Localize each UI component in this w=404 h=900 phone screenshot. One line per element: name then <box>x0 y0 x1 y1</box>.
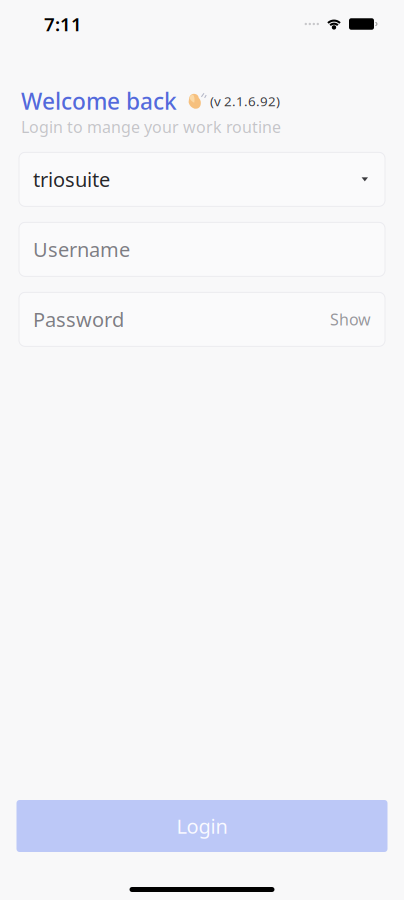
staticText: triosuite <box>33 166 110 193</box>
staticText: Password <box>33 306 124 333</box>
staticText: 7:11 <box>44 12 82 36</box>
button[interactable]: Login <box>16 800 387 852</box>
staticText: Username <box>33 236 130 263</box>
button[interactable]: Show <box>330 309 371 330</box>
button[interactable]: Username <box>19 222 385 276</box>
button[interactable]: Workspace, triosuite <box>19 152 385 206</box>
staticText: Login to mange your work routine <box>21 116 281 137</box>
button[interactable]: Password <box>19 292 385 346</box>
staticText: Welcome back <box>21 86 177 116</box>
staticText: (v 2.1.6.92) <box>210 92 280 110</box>
staticText: Login <box>176 813 227 839</box>
staticText: Show <box>330 309 371 330</box>
